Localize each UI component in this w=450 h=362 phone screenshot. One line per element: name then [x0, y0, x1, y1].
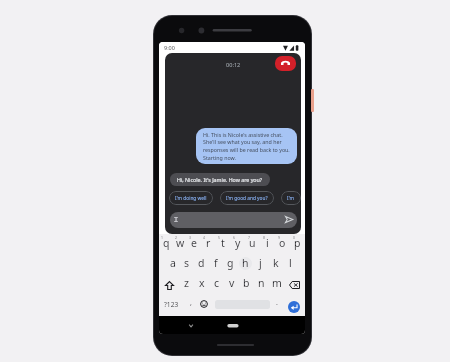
staticText: Hi. This is Nicole's assistive chat. She…	[203, 131, 292, 161]
button[interactable]: .	[270, 295, 283, 315]
staticText: f	[214, 256, 218, 270]
button[interactable]: Hi. This is Nicole's assistive chat. She…	[196, 128, 297, 164]
button[interactable]: g	[223, 255, 238, 275]
button[interactable]: Backspace	[284, 275, 305, 295]
button[interactable]: a	[166, 255, 180, 275]
staticText: 9	[278, 235, 280, 240]
button[interactable]: k	[268, 255, 283, 275]
button[interactable]: 5	[215, 235, 230, 255]
staticText: i	[266, 236, 269, 250]
staticText: Hi, Nicole. It's Jamie. How are you?	[177, 176, 263, 183]
button[interactable]: 8	[260, 235, 275, 255]
staticText: n	[258, 276, 265, 290]
staticText: I'm doing well	[175, 195, 207, 202]
staticText: t	[221, 236, 225, 250]
button[interactable]: ?123	[159, 295, 184, 315]
staticText: ?123	[164, 300, 179, 309]
staticText: e	[191, 236, 197, 250]
staticText: z	[184, 276, 189, 290]
staticText: ,	[190, 298, 192, 308]
button[interactable]: I'm good and you?	[220, 191, 274, 205]
button[interactable]: ,	[184, 295, 197, 315]
staticText: x	[199, 276, 205, 290]
staticText: .	[276, 298, 278, 308]
staticText: r	[206, 236, 211, 250]
staticText: 4	[203, 235, 205, 240]
other: Send	[285, 216, 293, 223]
staticText: I'm good and you?	[226, 195, 268, 202]
button[interactable]: I'm doing well	[169, 191, 213, 205]
staticText: c	[214, 276, 220, 290]
staticText: 9:00	[164, 44, 175, 51]
button[interactable]: j	[253, 255, 268, 275]
staticText: y	[235, 236, 241, 250]
button[interactable]: h	[238, 255, 253, 275]
button[interactable]: Enter	[288, 301, 300, 313]
button[interactable]: s	[180, 255, 194, 275]
staticText: d	[198, 256, 205, 270]
staticText: s	[184, 256, 190, 270]
staticText: b	[243, 276, 250, 290]
staticText: v	[229, 276, 235, 290]
staticText: 3	[189, 235, 191, 240]
button[interactable]: 9	[275, 235, 290, 255]
button[interactable]: 2	[173, 235, 187, 255]
staticText: k	[273, 256, 279, 270]
staticText: h	[242, 256, 249, 270]
button[interactable]: 4	[201, 235, 215, 255]
staticText: 1	[161, 235, 163, 240]
button[interactable]: v	[224, 275, 239, 295]
button[interactable]: 7	[245, 235, 260, 255]
staticText: o	[279, 236, 286, 250]
staticText: p	[294, 236, 301, 250]
staticText: w	[176, 236, 185, 250]
staticText: 0	[293, 235, 295, 240]
button[interactable]: Hi, Nicole. It's Jamie. How are you?	[170, 173, 270, 186]
staticText: j	[259, 256, 262, 270]
staticText: 2	[175, 235, 177, 240]
staticText: u	[249, 236, 256, 250]
staticText: a	[170, 256, 176, 270]
button[interactable]: f	[208, 255, 223, 275]
staticText: g	[227, 256, 234, 270]
staticText: 8	[263, 235, 265, 240]
staticText: q	[163, 236, 170, 250]
button[interactable]: n	[254, 275, 269, 295]
button[interactable]: d	[194, 255, 208, 275]
button[interactable]: l	[283, 255, 298, 275]
button[interactable]: 6	[230, 235, 245, 255]
button[interactable]: 3	[187, 235, 201, 255]
button[interactable]: Shift	[159, 275, 179, 295]
staticText: 00:12	[226, 61, 241, 69]
button[interactable]: I'm good	[281, 191, 301, 205]
button[interactable]: m	[269, 275, 284, 295]
button[interactable]: 0	[290, 235, 305, 255]
button[interactable]: Send	[170, 212, 297, 228]
button[interactable]: Emoji	[197, 295, 211, 315]
staticText: 6	[233, 235, 235, 240]
button[interactable]: 1	[159, 235, 173, 255]
button[interactable]: z	[179, 275, 194, 295]
staticText: m	[272, 276, 282, 290]
button[interactable]: c	[209, 275, 224, 295]
button[interactable]: End call	[275, 56, 296, 71]
staticText: I'm good	[287, 195, 295, 202]
staticText: 5	[218, 235, 220, 240]
staticText: 7	[248, 235, 250, 240]
staticText: l	[289, 256, 292, 270]
button[interactable]: x	[194, 275, 209, 295]
button[interactable]: b	[239, 275, 254, 295]
